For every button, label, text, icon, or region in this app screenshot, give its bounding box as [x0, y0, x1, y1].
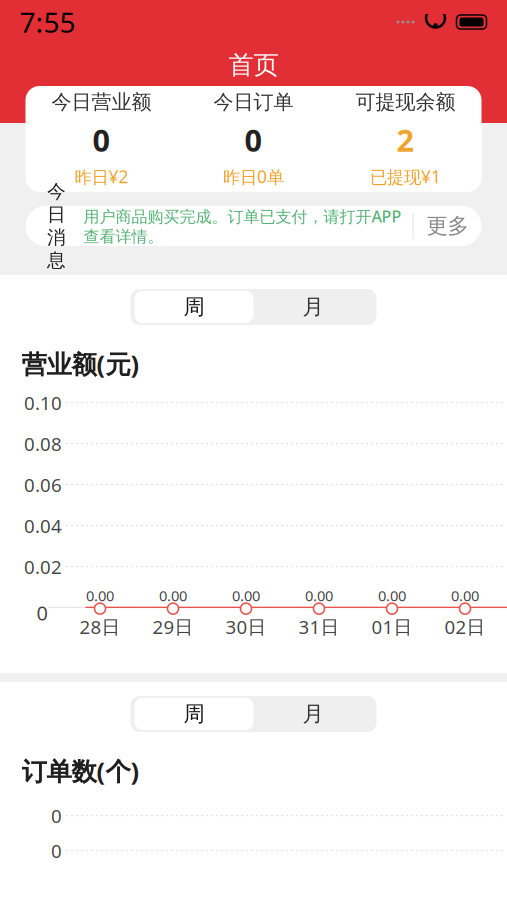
staticText: 0.00: [232, 586, 260, 605]
button[interactable]: 周: [134, 291, 253, 323]
staticText: 0: [51, 838, 62, 863]
button[interactable]: 月: [253, 698, 372, 730]
staticText: 2: [396, 119, 414, 160]
staticText: 订单数(个): [21, 754, 139, 788]
staticText: 0.04: [24, 513, 62, 538]
staticText: 7:55: [19, 3, 75, 41]
staticText: 首页: [228, 49, 278, 80]
staticText: 0.00: [305, 586, 333, 605]
staticText: 昨日0单: [223, 165, 284, 188]
staticText: 0.10: [24, 390, 62, 415]
staticText: 周: [183, 701, 204, 727]
staticText: 01日: [371, 614, 412, 639]
staticText: 0: [92, 119, 110, 160]
staticText: 29日: [152, 614, 193, 639]
staticText: 月: [302, 701, 323, 727]
staticText: 0.00: [86, 586, 114, 605]
staticText: 今日营业额: [51, 90, 151, 114]
staticText: 30日: [225, 614, 266, 639]
staticText: 月: [302, 294, 323, 320]
button[interactable]: 首页: [0, 44, 507, 86]
staticText: 0.00: [451, 586, 479, 605]
staticText: 更多: [426, 213, 468, 239]
staticText: 0.00: [378, 586, 406, 605]
staticText: 0: [244, 119, 262, 160]
staticText: 0: [36, 599, 47, 626]
button[interactable]: 月: [253, 291, 372, 323]
button[interactable]: 周: [134, 698, 253, 730]
staticText: 用户商品购买完成。订单已支付，请打开APP查看详情。: [83, 205, 401, 246]
staticText: 0.00: [159, 586, 187, 605]
staticText: 0: [51, 803, 62, 828]
staticText: 0.02: [24, 554, 62, 579]
staticText: 消息: [47, 226, 66, 272]
staticText: 28日: [79, 614, 120, 639]
staticText: 31日: [298, 614, 339, 639]
staticText: 已提现¥1: [370, 165, 441, 188]
staticText: 可提现余额: [355, 90, 455, 114]
staticText: 02日: [444, 614, 485, 639]
staticText: 0.06: [24, 472, 62, 497]
staticText: 今日: [47, 180, 66, 226]
staticText: 0.08: [24, 431, 62, 456]
staticText: 周: [183, 294, 204, 320]
button[interactable]: 今日: [0, 206, 507, 246]
staticText: 营业额(元): [21, 347, 139, 381]
staticText: 昨日¥2: [74, 165, 128, 188]
staticText: 今日订单: [213, 90, 293, 114]
